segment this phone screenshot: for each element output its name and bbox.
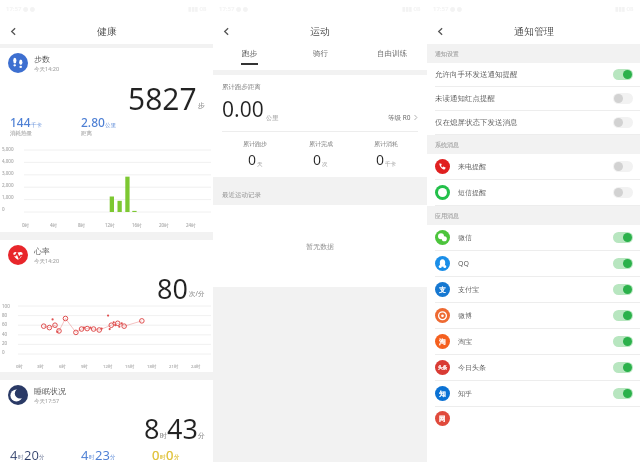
staticText: ▮▮▮ 08 <box>188 5 207 13</box>
button[interactable]: 来电提醒 <box>427 154 640 179</box>
button[interactable]: Enabled <box>613 69 633 80</box>
button[interactable]: 骑行 <box>285 44 356 70</box>
staticText: 12时 <box>103 363 113 369</box>
staticText: 12时 <box>105 222 115 228</box>
staticText: 0 <box>152 446 160 462</box>
button[interactable]: Enabled <box>613 362 633 373</box>
button[interactable]: Enabled <box>613 310 633 321</box>
button[interactable]: 未读通知红点提醒 <box>427 87 640 110</box>
button[interactable]: 知 <box>427 381 640 406</box>
staticText: 千卡 <box>385 161 396 168</box>
button[interactable]: 步数 <box>0 48 213 78</box>
staticText: 4 <box>81 446 89 462</box>
staticText: 支付宝 <box>458 285 613 294</box>
staticText: 15时 <box>125 363 135 369</box>
button[interactable]: 仅在熄屏状态下发送消息 <box>427 111 640 134</box>
staticText: 2.80 <box>81 114 105 130</box>
button[interactable]: 微博 <box>427 303 640 328</box>
staticText: 4 <box>10 446 18 462</box>
button[interactable]: 自由训练 <box>356 44 427 70</box>
staticText: 淘宝 <box>458 337 613 346</box>
button[interactable]: Enabled <box>613 284 633 295</box>
button[interactable]: 心率 <box>0 240 213 270</box>
staticText: 时 <box>89 454 95 461</box>
button[interactable]: Back <box>213 18 239 44</box>
staticText: 千卡 <box>31 122 42 129</box>
button[interactable]: Enabled <box>613 232 633 243</box>
button[interactable]: Enabled <box>613 388 633 399</box>
button[interactable]: 支 <box>427 277 640 302</box>
staticText: 17:57 ● ● <box>6 5 35 13</box>
staticText: 消耗热量 <box>10 130 32 137</box>
staticText: 累计跑步 <box>243 140 267 148</box>
staticText: 0 <box>2 349 5 355</box>
staticText: 短信提醒 <box>458 188 613 197</box>
staticText: 时 <box>160 431 167 440</box>
staticText: 累计消耗 <box>374 140 398 148</box>
staticText: 步数 <box>34 54 50 64</box>
staticText: 心率 <box>34 246 50 256</box>
staticText: 80 <box>157 270 188 302</box>
button[interactable]: 允许向手环发送通知提醒 <box>427 63 640 86</box>
staticText: 17:57 ● ● <box>433 5 462 13</box>
button[interactable]: 头条 <box>427 355 640 380</box>
staticText: 5,000 <box>2 146 14 152</box>
staticText: 仅在熄屏状态下发送消息 <box>435 118 613 127</box>
staticText: 分 <box>39 454 45 461</box>
button[interactable]: Enabled <box>613 258 633 269</box>
staticText: 9时 <box>81 363 88 369</box>
button[interactable]: 睡眠状况 <box>0 380 213 410</box>
staticText: 淘 <box>439 338 446 346</box>
staticText: 23 <box>95 446 110 462</box>
staticText: 累计完成 <box>309 140 333 148</box>
staticText: 40 <box>2 331 8 337</box>
staticText: 通知管理 <box>514 25 554 38</box>
staticText: 睡眠状况 <box>34 386 66 396</box>
staticText: 来电提醒 <box>458 162 613 171</box>
staticText: 80 <box>2 312 8 318</box>
button[interactable]: Back <box>427 18 453 44</box>
staticText: 20 <box>2 340 8 346</box>
button[interactable]: 短信提醒 <box>427 180 640 205</box>
staticText: 43 <box>167 410 198 444</box>
staticText: ▮▮▮ 08 <box>402 5 421 13</box>
staticText: QQ <box>458 259 613 269</box>
staticText: 公里 <box>266 114 278 122</box>
staticText: 3,000 <box>2 170 14 176</box>
button[interactable]: 淘 <box>427 329 640 354</box>
staticText: 今天14:20 <box>34 257 60 265</box>
staticText: 8时 <box>78 222 86 228</box>
staticText: 17:57 ● ● <box>219 5 248 13</box>
button[interactable]: Disabled <box>613 161 633 172</box>
staticText: 暂无数据 <box>306 242 334 251</box>
staticText: 分 <box>174 454 180 461</box>
staticText: 允许向手环发送通知提醒 <box>435 70 613 79</box>
button[interactable]: Enabled <box>613 336 633 347</box>
staticText: 时 <box>18 454 24 461</box>
staticText: 支 <box>439 286 446 294</box>
staticText: 0 <box>166 446 174 462</box>
button[interactable]: Disabled <box>613 93 633 104</box>
staticText: 网 <box>439 415 446 423</box>
staticText: 21时 <box>169 363 179 369</box>
staticText: 今天17:57 <box>34 397 60 405</box>
staticText: 100 <box>2 303 10 309</box>
staticText: 次 <box>322 161 328 168</box>
button[interactable]: Disabled <box>613 187 633 198</box>
button[interactable]: Back <box>0 18 26 44</box>
staticText: 公里 <box>105 122 116 129</box>
button[interactable]: Disabled <box>613 117 633 128</box>
button[interactable]: 跑步 <box>213 44 285 70</box>
button[interactable]: 等级 R0 <box>388 113 418 122</box>
staticText: 24时 <box>191 363 201 369</box>
staticText: 18时 <box>147 363 157 369</box>
staticText: 步 <box>198 101 205 110</box>
staticText: 次/分 <box>189 289 205 298</box>
staticText: 今日头条 <box>458 363 613 372</box>
staticText: 8 <box>144 410 160 444</box>
staticText: 分 <box>198 431 205 440</box>
button[interactable]: 微信 <box>427 225 640 250</box>
staticText: 应用消息 <box>435 212 459 220</box>
staticText: 累计跑步距离 <box>222 83 261 91</box>
button[interactable]: QQ <box>427 251 640 276</box>
